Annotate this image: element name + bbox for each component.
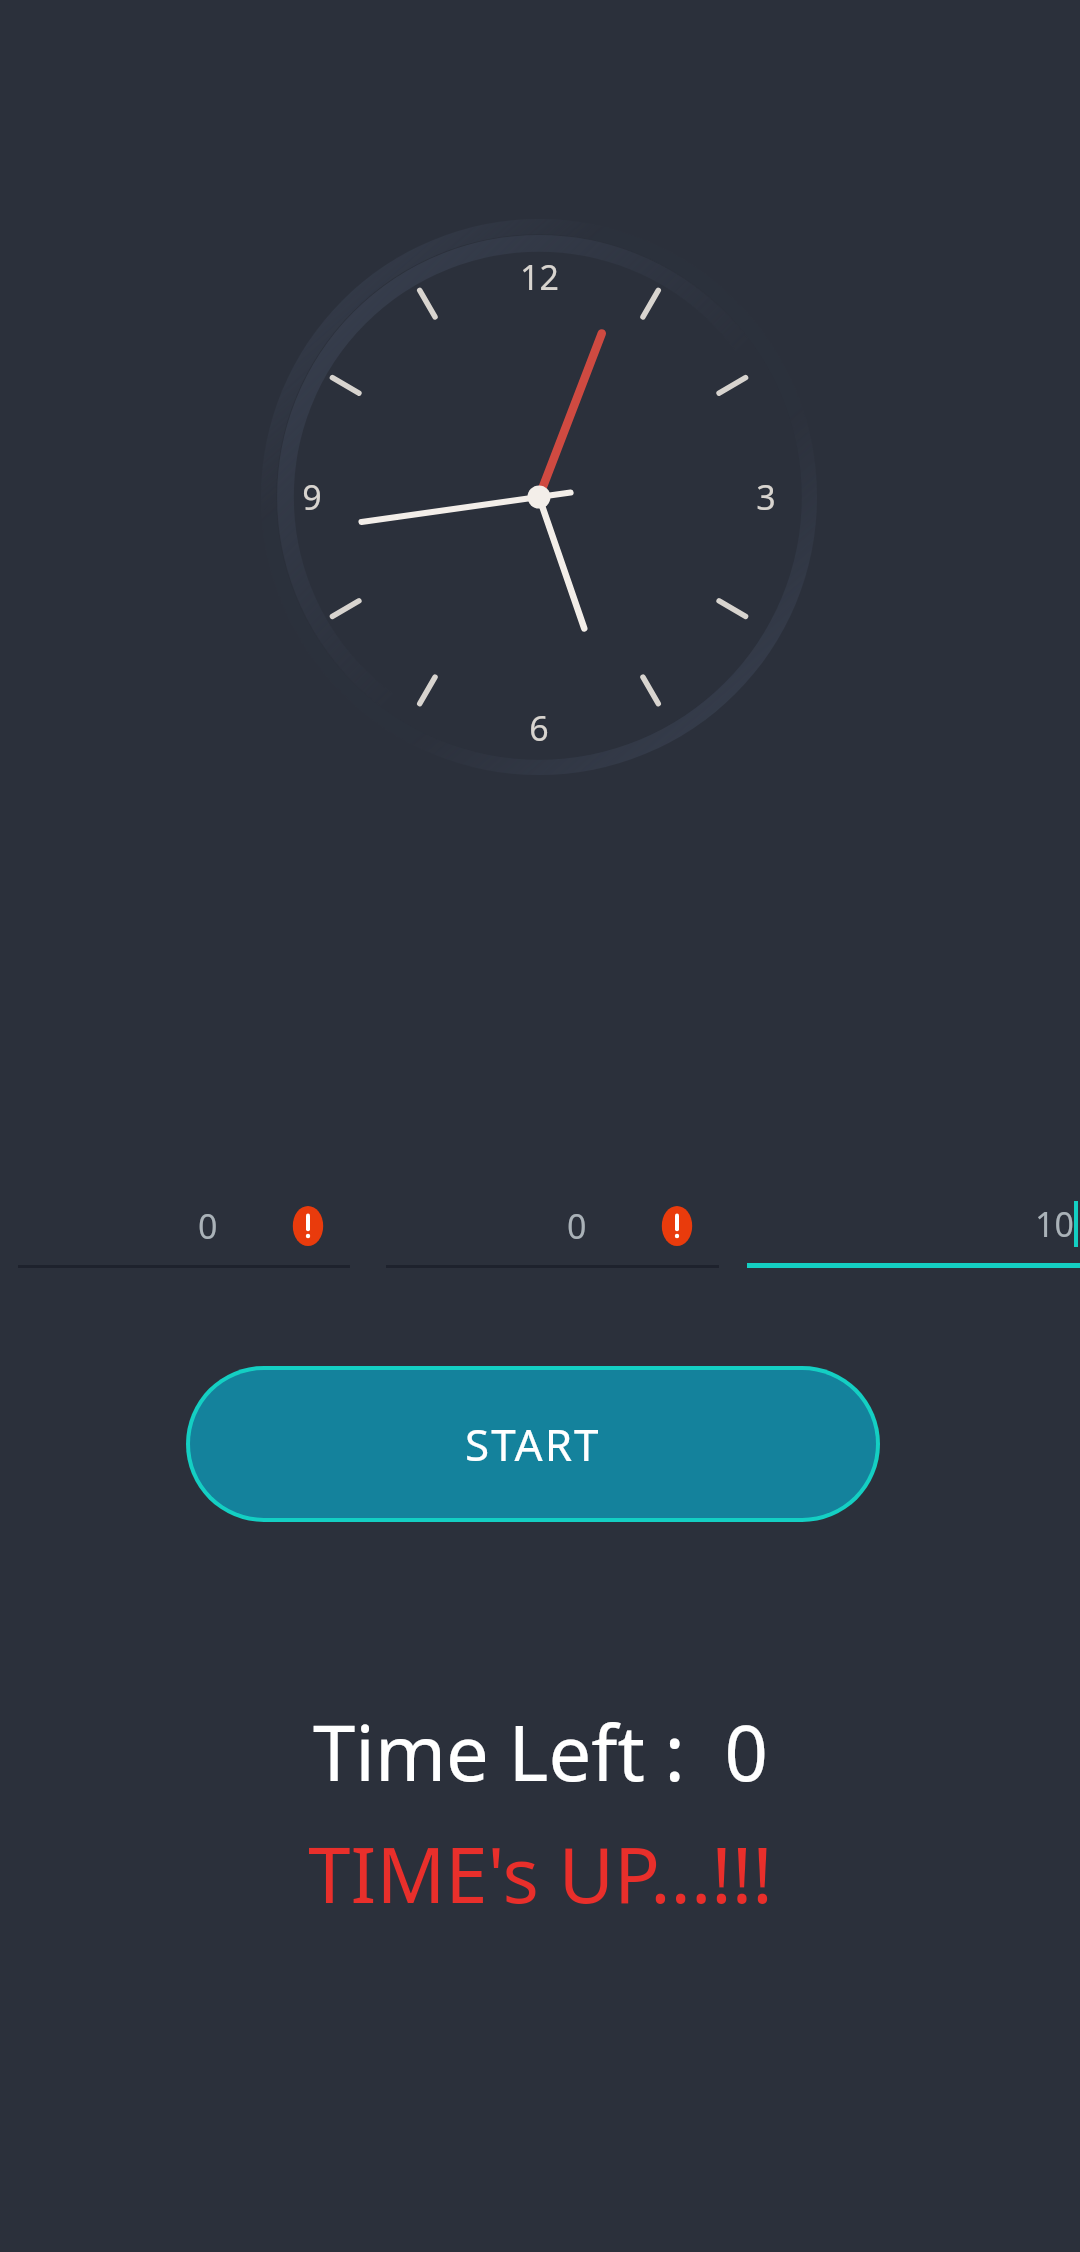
staticText: 3 — [756, 474, 776, 520]
staticText: START — [465, 1414, 601, 1474]
staticText: 12 — [520, 254, 559, 300]
staticText: 10 — [1035, 1201, 1074, 1247]
other: Input error — [657, 1206, 697, 1246]
staticText: 9 — [302, 474, 322, 520]
button[interactable]: 0 — [386, 1187, 719, 1268]
button[interactable]: 10 — [747, 1185, 1080, 1268]
button[interactable]: 0 — [18, 1187, 350, 1268]
staticText: 0 — [198, 1203, 218, 1249]
other: Input error — [288, 1206, 328, 1246]
staticText: 6 — [529, 705, 549, 751]
staticText: Time Left : 0 — [313, 1700, 768, 1804]
button[interactable]: START — [186, 1366, 880, 1522]
staticText: 0 — [567, 1203, 587, 1249]
staticText: TIME's UP...!!! — [308, 1822, 773, 1926]
